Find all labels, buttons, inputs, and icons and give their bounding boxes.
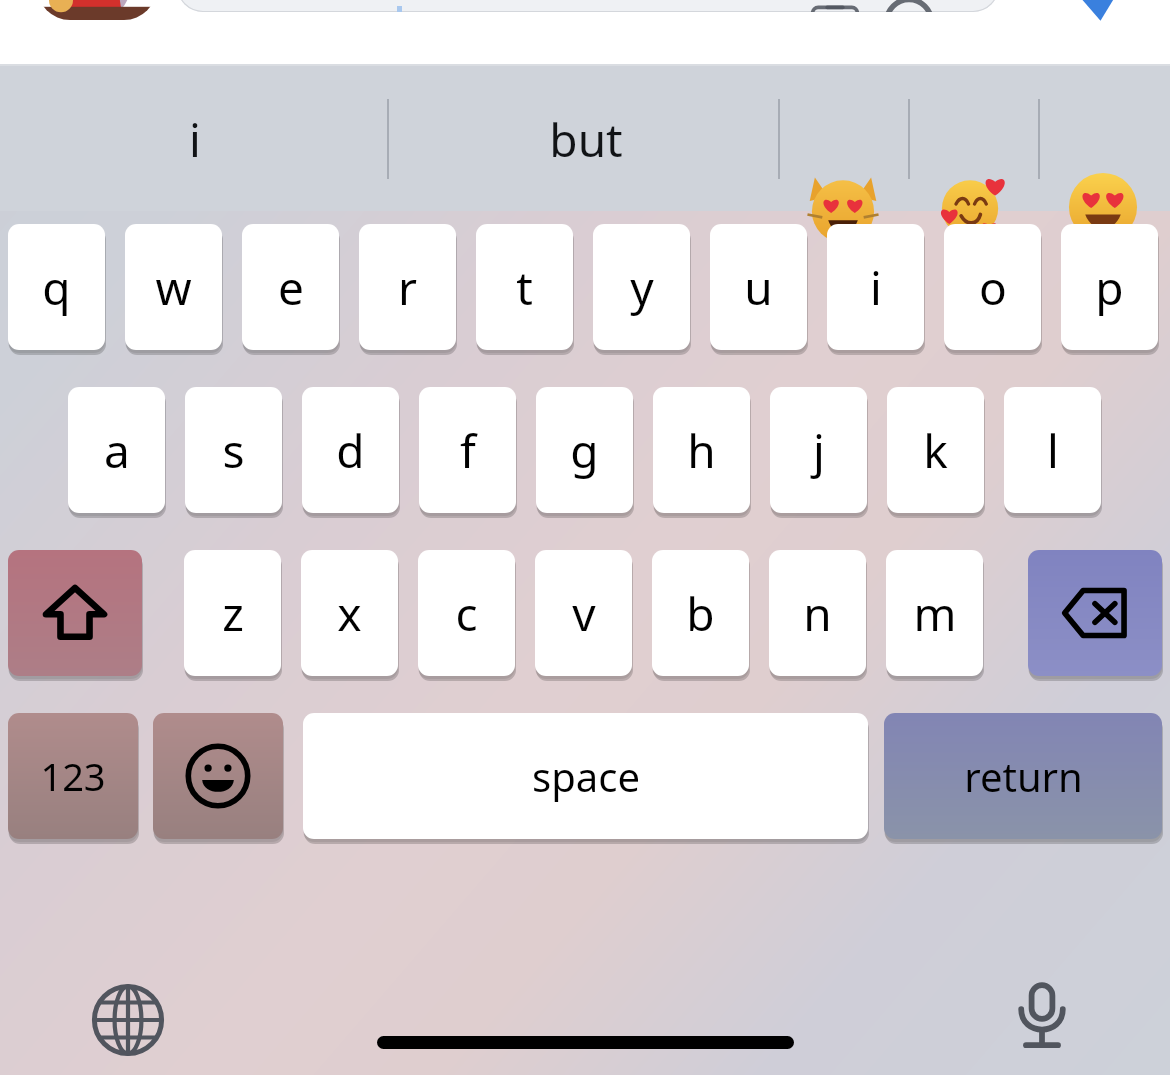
button[interactable]: Shift	[8, 550, 142, 676]
staticText: x	[337, 582, 362, 645]
button[interactable]: n	[769, 550, 866, 676]
button[interactable]: u	[710, 224, 807, 350]
button[interactable]: Dictate	[1002, 974, 1082, 1054]
button[interactable]: Emoji	[153, 713, 283, 839]
button[interactable]: x	[301, 550, 398, 676]
button[interactable]: Camera	[177, 0, 999, 12]
button[interactable]: q	[8, 224, 105, 350]
button[interactable]: d	[302, 387, 399, 513]
staticText: y	[630, 256, 654, 319]
staticText: h	[687, 419, 716, 482]
button[interactable]: k	[887, 387, 984, 513]
staticText: return	[964, 749, 1083, 803]
button[interactable]: e	[242, 224, 339, 350]
button[interactable]: space	[303, 713, 868, 839]
button[interactable]: g	[536, 387, 633, 513]
staticText: u	[744, 256, 773, 319]
staticText: r	[398, 256, 417, 319]
staticText: o	[979, 256, 1007, 319]
button[interactable]: Send	[1036, 0, 1140, 26]
staticText: m	[913, 582, 957, 645]
button[interactable]: r	[359, 224, 456, 350]
staticText: g	[570, 419, 599, 482]
staticText: w	[155, 256, 192, 319]
staticText: a	[104, 419, 130, 482]
button[interactable]: z	[184, 550, 281, 676]
button[interactable]: Switch language	[88, 980, 168, 1060]
button[interactable]: l	[1004, 387, 1101, 513]
button[interactable]: Stickers	[881, 0, 937, 12]
button[interactable]: Delete	[1028, 550, 1162, 676]
button[interactable]: Heart eyes emoji	[1066, 170, 1140, 244]
staticText: f	[460, 419, 476, 482]
button[interactable]: Smiling face with hearts emoji	[936, 170, 1010, 244]
button[interactable]: i	[160, 108, 230, 171]
staticText: p	[1095, 256, 1124, 319]
button[interactable]: m	[886, 550, 983, 676]
staticText: b	[686, 582, 715, 645]
staticText: c	[455, 582, 478, 645]
button[interactable]: y	[593, 224, 690, 350]
staticText: d	[336, 419, 365, 482]
button[interactable]: a	[68, 387, 165, 513]
button[interactable]: j	[770, 387, 867, 513]
button[interactable]: s	[185, 387, 282, 513]
button[interactable]: Contact avatar	[37, 0, 157, 20]
staticText: k	[923, 419, 948, 482]
button[interactable]: t	[476, 224, 573, 350]
button[interactable]: f	[419, 387, 516, 513]
button[interactable]: c	[418, 550, 515, 676]
button[interactable]: o	[944, 224, 1041, 350]
button[interactable]: v	[535, 550, 632, 676]
staticText: l	[1047, 419, 1059, 482]
button[interactable]: but	[516, 108, 656, 171]
button[interactable]: p	[1061, 224, 1158, 350]
button[interactable]: h	[653, 387, 750, 513]
button[interactable]: Heart eyes cat emoji	[806, 170, 880, 244]
staticText: z	[222, 582, 244, 645]
staticText: s	[222, 419, 245, 482]
button[interactable]: return	[884, 713, 1162, 839]
staticText: n	[803, 582, 832, 645]
staticText: i	[870, 256, 882, 319]
staticText: space	[532, 749, 640, 803]
staticText: 123	[40, 750, 106, 802]
staticText: q	[42, 256, 71, 319]
button[interactable]: b	[652, 550, 749, 676]
button[interactable]: Camera	[807, 0, 863, 12]
button[interactable]: i	[827, 224, 924, 350]
staticText: t	[516, 256, 533, 319]
button[interactable]: 123	[8, 713, 138, 839]
staticText: j	[813, 419, 825, 482]
button[interactable]: w	[125, 224, 222, 350]
staticText: e	[278, 256, 304, 319]
staticText: v	[572, 582, 596, 645]
